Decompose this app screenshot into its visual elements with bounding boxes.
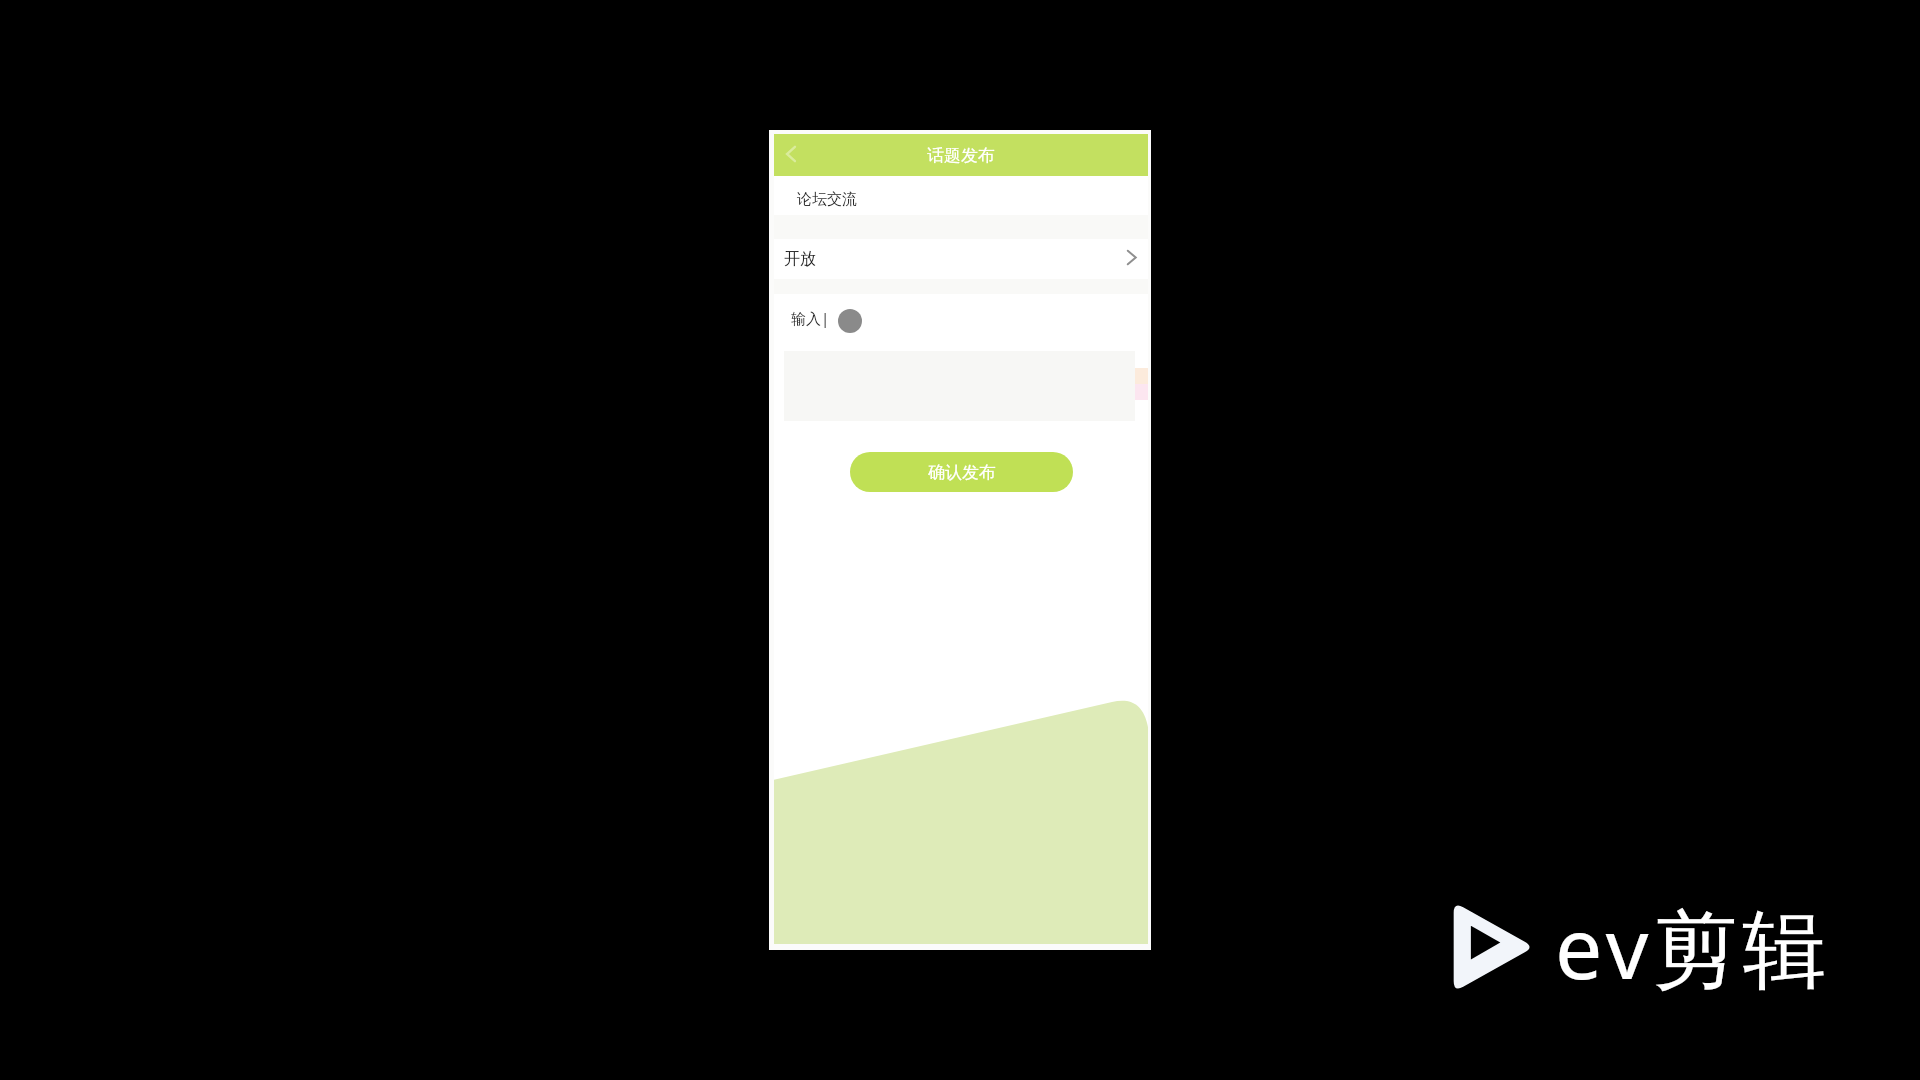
staticText: 确认发布 [928,462,996,483]
button[interactable]: 输入| [774,294,1148,421]
button[interactable]: 开放 [774,239,1148,279]
staticText: ev剪辑 [1555,889,1832,1004]
staticText: 论坛交流 [797,190,857,209]
button[interactable]: 论坛交流 [774,184,1148,215]
staticText: 话题发布 [927,145,995,166]
button[interactable]: Back [774,137,810,173]
staticText: 输入| [791,308,830,328]
staticText: 开放 [784,249,816,269]
button[interactable]: 确认发布 [850,452,1073,492]
